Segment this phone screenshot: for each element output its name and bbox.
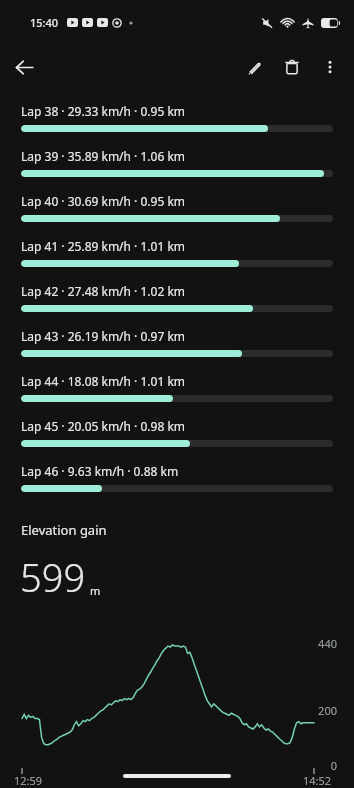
staticText: Lap 39 · 35.89 km/h · 1.06 km [21, 148, 186, 164]
button[interactable]: Lap 42 · 27.48 km/h · 1.02 km [0, 276, 354, 321]
button[interactable]: Lap 45 · 20.05 km/h · 0.98 km [0, 411, 354, 456]
button[interactable]: Edit [236, 49, 272, 85]
staticText: Lap 45 · 20.05 km/h · 0.98 km [21, 418, 186, 434]
staticText: Lap 44 · 18.08 km/h · 1.01 km [21, 373, 186, 389]
staticText: 12:59 [14, 773, 43, 788]
staticText: 14:52 [303, 773, 332, 788]
staticText: Lap 41 · 25.89 km/h · 1.01 km [21, 238, 186, 254]
button[interactable]: Lap 39 · 35.89 km/h · 1.06 km [0, 141, 354, 186]
button[interactable]: Back [6, 49, 42, 85]
staticText: Lap 46 · 9.63 km/h · 0.88 km [21, 463, 179, 479]
staticText: 440 [318, 636, 337, 651]
staticText: Lap 42 · 27.48 km/h · 1.02 km [21, 283, 186, 299]
staticText: Lap 38 · 29.33 km/h · 0.95 km [21, 103, 186, 119]
button[interactable]: Lap 40 · 30.69 km/h · 0.95 km [0, 186, 354, 231]
button[interactable]: Lap 43 · 26.19 km/h · 0.97 km [0, 321, 354, 366]
button[interactable]: Lap 46 · 9.63 km/h · 0.88 km [0, 456, 354, 501]
staticText: Elevation gain [21, 521, 107, 539]
button[interactable]: More options [312, 49, 348, 85]
button[interactable]: Lap 38 · 29.33 km/h · 0.95 km [0, 96, 354, 141]
staticText: 15:40 [30, 15, 59, 30]
staticText: 0 [330, 758, 337, 771]
staticText: 200 [318, 703, 337, 718]
staticText: m [90, 583, 101, 598]
staticText: Lap 40 · 30.69 km/h · 0.95 km [21, 193, 186, 209]
button[interactable]: Delete [274, 49, 310, 85]
staticText: 599 [20, 551, 86, 603]
button[interactable]: Lap 41 · 25.89 km/h · 1.01 km [0, 231, 354, 276]
staticText: Lap 43 · 26.19 km/h · 0.97 km [21, 328, 186, 344]
button[interactable]: Lap 44 · 18.08 km/h · 1.01 km [0, 366, 354, 411]
